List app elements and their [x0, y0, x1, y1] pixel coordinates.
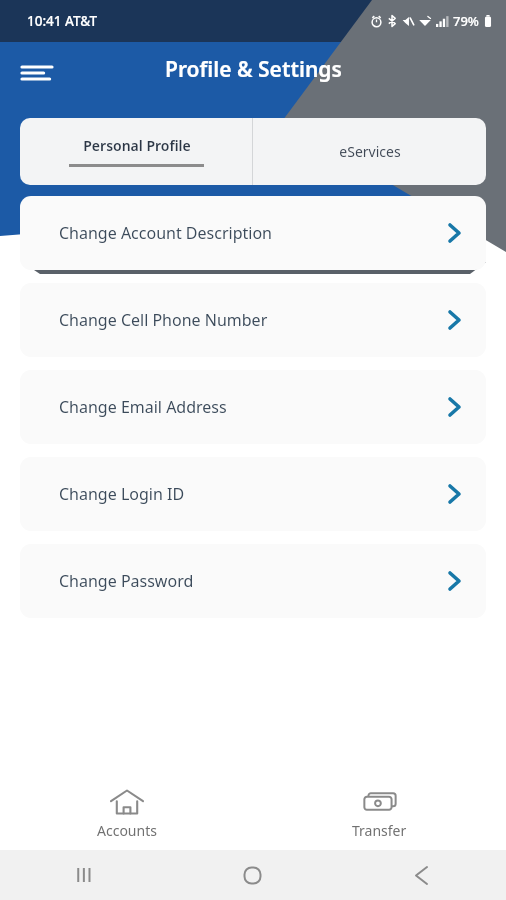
staticText: Change Password: [59, 570, 194, 592]
button[interactable]: Change Password: [20, 544, 486, 618]
button[interactable]: Open navigation menu: [14, 50, 60, 96]
staticText: Accounts: [97, 821, 157, 840]
button[interactable]: Change Email Address: [20, 370, 486, 444]
staticText: 10:41 AT&T: [27, 12, 98, 30]
staticText: Change Cell Phone Number: [59, 309, 268, 331]
button[interactable]: Transfer: [253, 778, 506, 850]
staticText: Personal Profile: [83, 136, 191, 155]
button[interactable]: Accounts: [0, 778, 253, 850]
staticText: Change Account Description: [59, 222, 272, 244]
staticText: eServices: [339, 142, 401, 161]
staticText: Change Login ID: [59, 483, 185, 505]
button[interactable]: eServices: [253, 118, 486, 185]
staticText: Profile & Settings: [165, 55, 342, 84]
staticText: Change Email Address: [59, 396, 227, 418]
button[interactable]: Change Account Description: [20, 196, 486, 270]
staticText: 79%: [453, 12, 479, 30]
button[interactable]: Change Cell Phone Number: [20, 283, 486, 357]
staticText: Transfer: [352, 821, 407, 840]
button[interactable]: Personal Profile: [20, 118, 252, 185]
button[interactable]: Change Login ID: [20, 457, 486, 531]
